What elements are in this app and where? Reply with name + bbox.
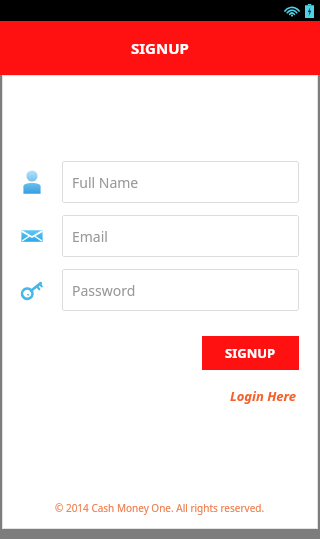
staticText: SIGNUP (131, 38, 189, 58)
other: Wi-Fi (284, 5, 300, 17)
other: Full name (19, 169, 45, 195)
button[interactable]: Full Name (62, 161, 299, 203)
button[interactable]: Password (62, 269, 299, 311)
staticText: Full Name (72, 173, 139, 192)
button[interactable]: Email (62, 215, 299, 257)
staticText: Email (72, 227, 108, 246)
other: Battery (305, 4, 314, 18)
button[interactable]: Login Here (228, 385, 299, 407)
staticText: Password (72, 281, 136, 300)
other: Email (20, 224, 44, 248)
other: Password (19, 277, 45, 303)
staticText: Login Here (230, 387, 297, 405)
staticText: © 2014 Cash Money One. All rights reserv… (55, 501, 265, 515)
button[interactable]: SIGNUP (202, 336, 299, 370)
staticText: SIGNUP (225, 344, 276, 362)
